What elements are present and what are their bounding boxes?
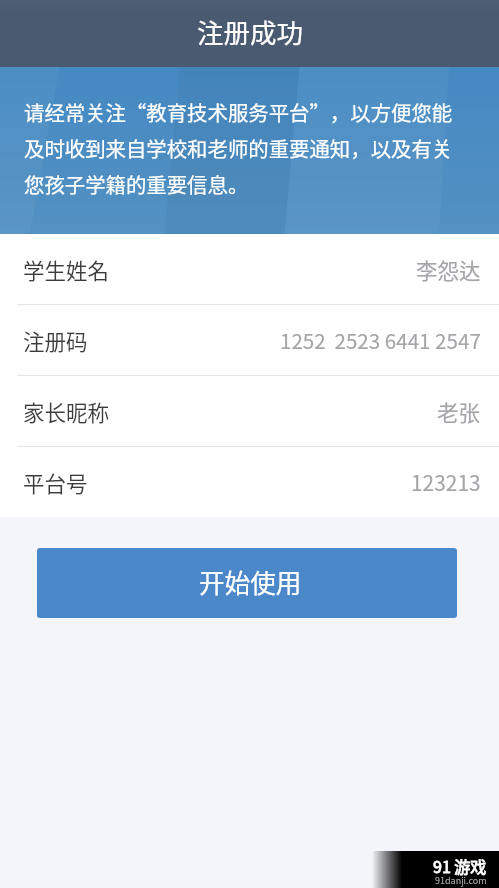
button[interactable]: 平台号 [0, 447, 499, 517]
staticText: 家长昵称 [23, 396, 110, 427]
staticText: 老张 [437, 396, 481, 427]
staticText: 注册码 [23, 325, 88, 356]
staticText: 注册成功 [197, 12, 303, 50]
staticText: 李怨达 [416, 254, 481, 285]
button[interactable]: 开始使用 [37, 548, 457, 618]
button[interactable]: 家长昵称 [0, 376, 499, 447]
staticText: 91 游戏 [433, 854, 487, 877]
button[interactable]: 学生姓名 [0, 234, 499, 305]
other: 91danji.com watermark [372, 851, 499, 888]
staticText: 及时收到来自学校和老师的重要通知，以及有关 [24, 128, 453, 164]
staticText: 请经常关注“教育技术服务平台”，以方便您能 [24, 92, 453, 128]
staticText: 91danji.com [435, 874, 487, 887]
staticText: 平台号 [23, 467, 88, 498]
staticText: 1252 2523 6441 2547 [280, 325, 481, 355]
staticText: 学生姓名 [23, 254, 110, 285]
staticText: 您孩子学籍的重要信息。 [24, 164, 249, 200]
staticText: 123213 [411, 467, 481, 497]
button[interactable]: 注册码 [0, 305, 499, 376]
staticText: 开始使用 [199, 563, 302, 600]
